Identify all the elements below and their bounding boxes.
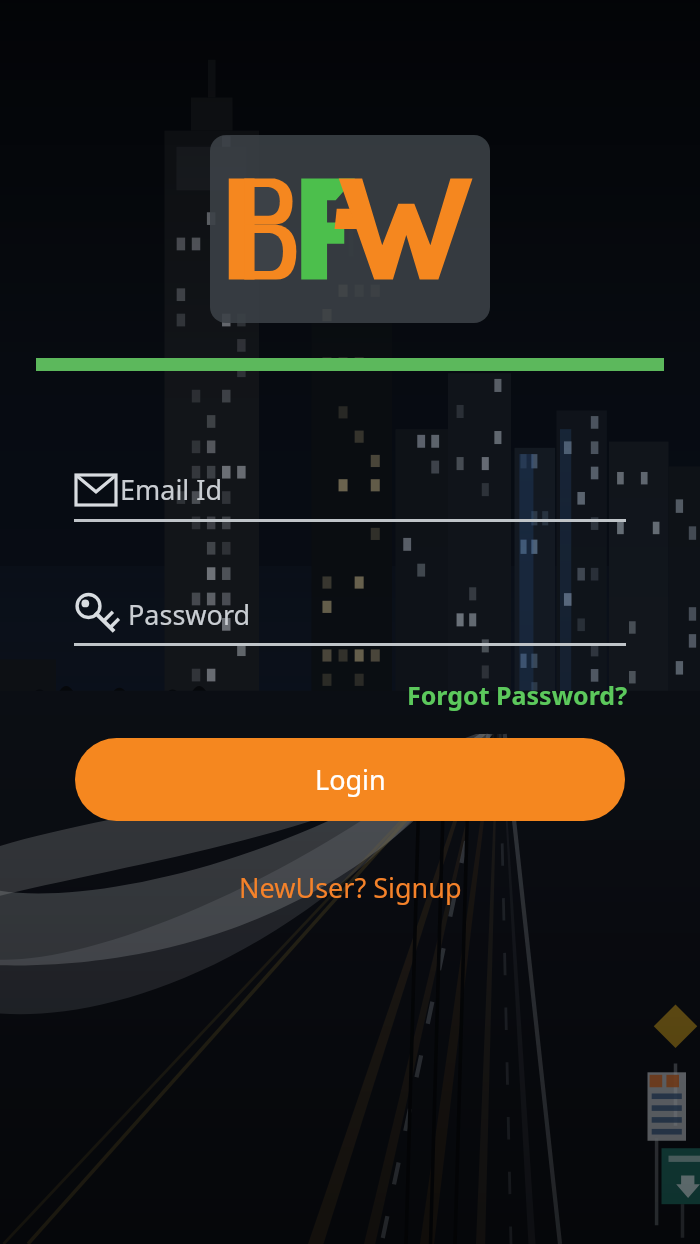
button[interactable]: Email Id bbox=[74, 471, 626, 522]
button[interactable]: NewUser? Signup bbox=[231, 863, 470, 912]
staticText: NewUser? Signup bbox=[239, 869, 462, 906]
button[interactable]: Login bbox=[75, 738, 625, 821]
button[interactable]: Password bbox=[74, 594, 626, 646]
button[interactable]: Forgot Password? bbox=[403, 674, 632, 716]
staticText: Forgot Password? bbox=[407, 678, 628, 712]
staticText: Login bbox=[315, 761, 386, 798]
staticText: Email Id bbox=[120, 471, 223, 508]
staticText: Password bbox=[128, 596, 251, 633]
